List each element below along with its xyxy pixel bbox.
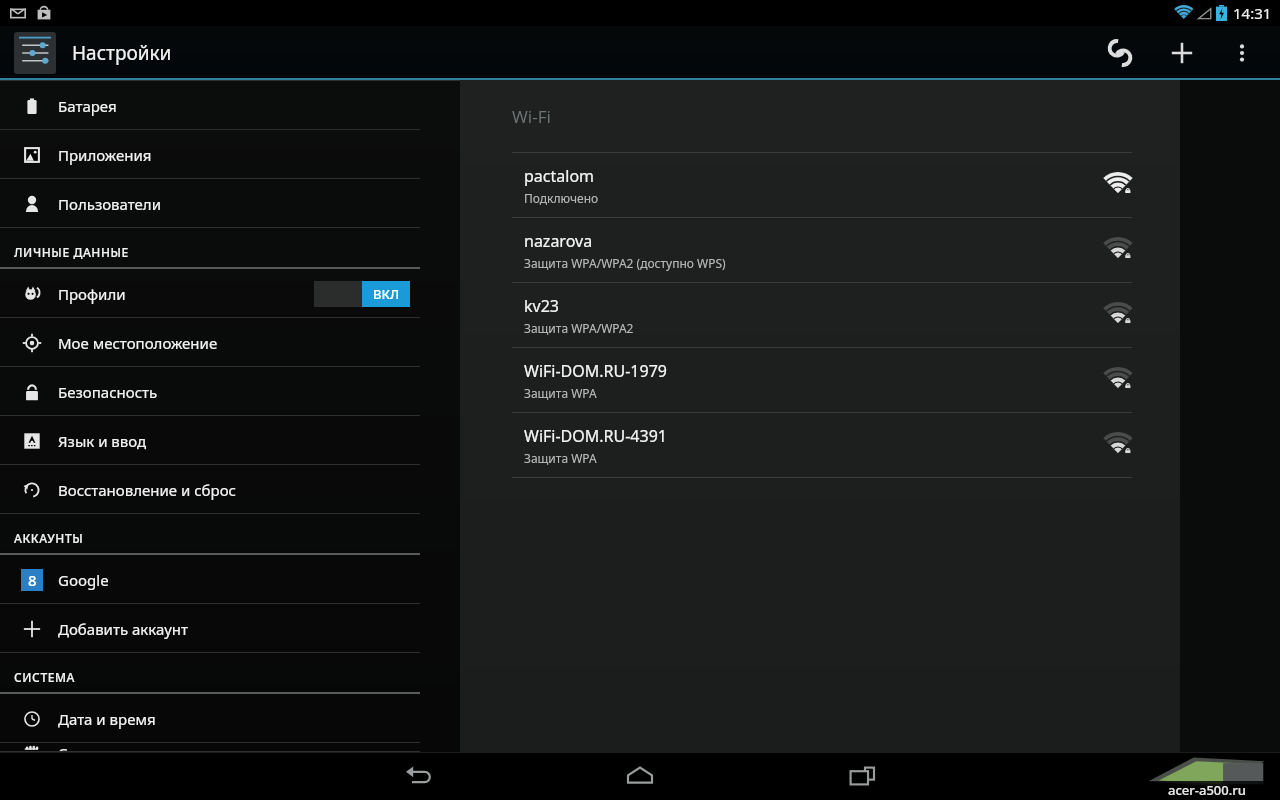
staticText: Wi-Fi <box>512 105 551 128</box>
button[interactable]: Язык и ввод <box>0 416 420 465</box>
button[interactable]: kv23 <box>460 283 1180 348</box>
staticText: Восстановление и сброс <box>58 480 236 500</box>
staticText: WiFi-DOM.RU-1979 <box>524 360 667 382</box>
staticText: pactalom <box>524 165 595 187</box>
staticText: Приложения <box>58 145 152 165</box>
staticText: Подключено <box>524 190 599 206</box>
button[interactable]: nazarova <box>460 218 1180 283</box>
staticText: Защита WPA <box>524 450 597 466</box>
button[interactable]: Ещё <box>1220 31 1264 75</box>
staticText: Google <box>58 570 109 590</box>
staticText: Батарея <box>58 96 117 116</box>
button[interactable]: WiFi-DOM.RU-4391 <box>460 413 1180 478</box>
staticText: Защита WPA/WPA2 (доступно WPS) <box>524 255 726 271</box>
button[interactable]: Восстановление и сброс <box>0 465 420 514</box>
button[interactable]: Профили <box>0 269 420 318</box>
staticText: kv23 <box>524 295 559 317</box>
staticText: 14:31 <box>1233 3 1272 23</box>
button[interactable]: Мое местоположение <box>0 318 420 367</box>
button[interactable]: Добавить аккаунт <box>0 604 420 653</box>
button[interactable]: Дата и время <box>0 694 420 743</box>
staticText: Мое местоположение <box>58 333 218 353</box>
button[interactable]: Батарея <box>0 81 420 130</box>
button[interactable]: Главный экран <box>602 752 678 800</box>
button[interactable]: Назад <box>380 752 456 800</box>
staticText: nazarova <box>524 230 593 252</box>
button[interactable]: Недавние приложения <box>824 752 900 800</box>
staticText: 8 <box>28 570 37 590</box>
staticText: СИСТЕМА <box>14 669 76 685</box>
staticText: Защита WPA <box>524 385 597 401</box>
staticText: ВКЛ <box>373 285 400 303</box>
button[interactable]: Приложения <box>0 130 420 179</box>
staticText: WiFi-DOM.RU-4391 <box>524 425 667 447</box>
button[interactable]: WiFi-DOM.RU-1979 <box>460 348 1180 413</box>
staticText: Пользователи <box>58 194 161 214</box>
button[interactable]: pactalom <box>460 153 1180 218</box>
staticText: Профили <box>58 284 126 304</box>
staticText: Безопасность <box>58 382 158 402</box>
staticText: Настройки <box>72 40 172 66</box>
staticText: Дата и время <box>58 709 156 729</box>
button[interactable]: Безопасность <box>0 367 420 416</box>
button[interactable]: Синхронизация <box>1096 29 1144 77</box>
button[interactable]: Добавить <box>1158 29 1206 77</box>
button[interactable]: Пользователи <box>0 179 420 228</box>
staticText: Добавить аккаунт <box>58 619 188 639</box>
button[interactable]: Спец. возможности <box>0 743 420 752</box>
staticText: Спец. возможности <box>58 743 201 752</box>
button[interactable]: Профили включены <box>314 281 410 307</box>
button[interactable]: 8 <box>0 555 420 604</box>
staticText: АККАУНТЫ <box>14 530 84 546</box>
staticText: Защита WPA/WPA2 <box>524 320 634 336</box>
button[interactable]: Настройки <box>14 32 56 74</box>
staticText: acer-a500.ru <box>1168 781 1246 799</box>
staticText: Язык и ввод <box>58 431 147 451</box>
staticText: ЛИЧНЫЕ ДАННЫЕ <box>14 244 129 260</box>
